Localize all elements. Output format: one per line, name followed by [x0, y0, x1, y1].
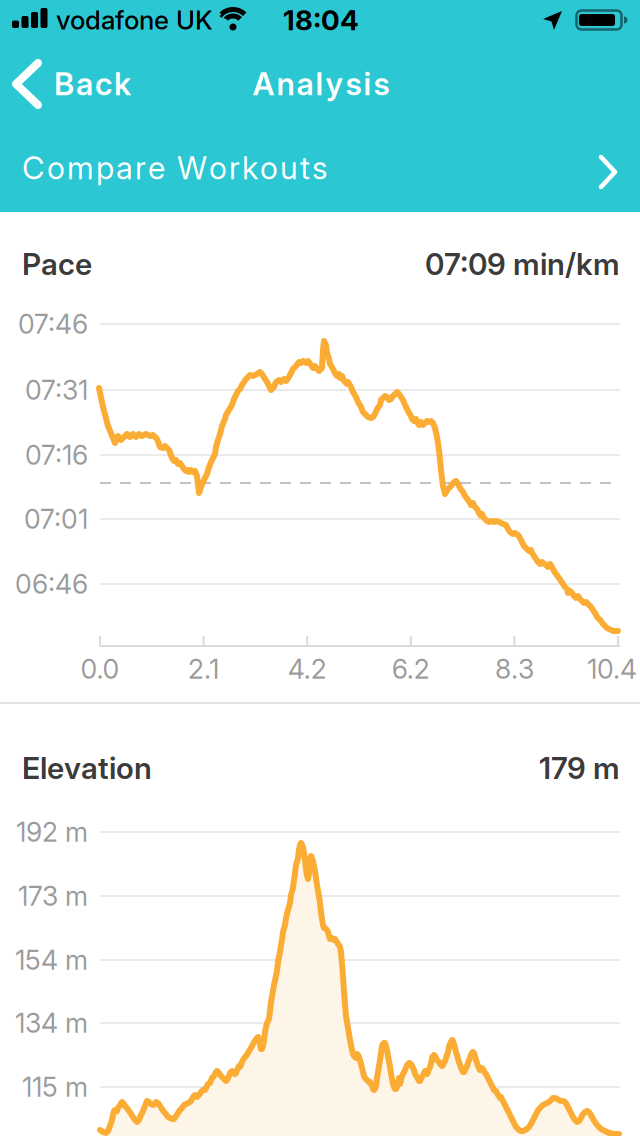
- staticText: 2.1: [188, 653, 219, 685]
- staticText: 06:46: [15, 568, 88, 600]
- staticText: Pace: [22, 246, 92, 282]
- button[interactable]: C o m p a r e W o r k o u t s: [0, 124, 640, 212]
- staticText: 07:01: [24, 503, 88, 535]
- staticText: 18:04: [283, 3, 359, 37]
- staticText: 4.2: [288, 653, 327, 685]
- staticText: 134 m: [15, 1007, 88, 1039]
- staticText: 179 m: [539, 750, 620, 786]
- staticText: C o m p a r e W o r k o u t s: [22, 149, 328, 187]
- staticText: 192 m: [16, 816, 88, 848]
- staticText: 8.3: [495, 653, 534, 685]
- staticText: 6.2: [392, 653, 430, 685]
- staticText: Elevation: [22, 750, 152, 786]
- staticText: 10.4: [587, 653, 637, 685]
- staticText: 07:16: [25, 439, 88, 471]
- staticText: vodafone UK: [56, 4, 213, 36]
- button[interactable]: B a c k: [0, 56, 150, 112]
- staticText: 154 m: [15, 944, 88, 976]
- staticText: 173 m: [18, 880, 88, 912]
- staticText: 115 m: [22, 1071, 88, 1103]
- staticText: 07:09 min/km: [425, 246, 620, 282]
- staticText: B a c k: [54, 65, 131, 103]
- staticText: 07:46: [18, 308, 88, 340]
- staticText: A n a l y s i s: [252, 65, 389, 103]
- staticText: 07:31: [25, 374, 88, 406]
- staticText: 0.0: [80, 653, 119, 685]
